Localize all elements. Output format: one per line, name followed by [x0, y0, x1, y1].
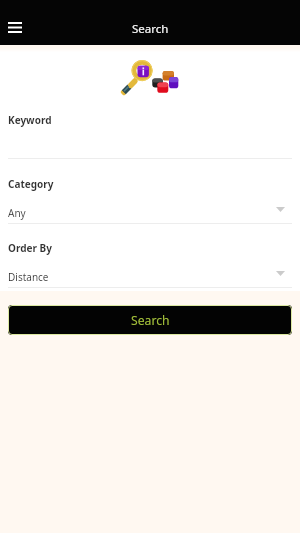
button[interactable]: Keyword input	[8, 128, 292, 159]
button[interactable]: Category selector, Any	[8, 200, 292, 225]
staticText: Search	[131, 312, 170, 329]
staticText: Distance	[8, 270, 49, 284]
button[interactable]: Search	[8, 305, 292, 335]
staticText: Category	[8, 177, 54, 191]
staticText: Any	[8, 206, 26, 220]
staticText: Order By	[8, 241, 52, 255]
button[interactable]: Order By selector, Distance	[8, 264, 292, 289]
button[interactable]: Open navigation menu	[0, 12, 30, 42]
staticText: Keyword	[8, 113, 52, 127]
staticText: Search	[132, 21, 169, 37]
other: Directory search logo	[118, 55, 186, 97]
